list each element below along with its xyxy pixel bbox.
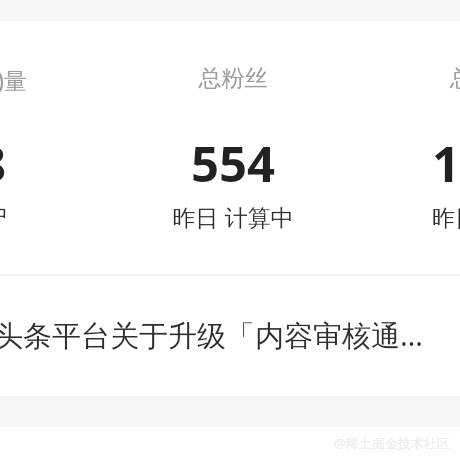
staticText: 总粉丝 [88,64,378,93]
button[interactable]: 次)量 [0,56,64,236]
staticText: 88 [0,130,7,197]
staticText: 次)量 [0,64,27,95]
button[interactable]: 总阅读 [378,56,460,236]
button[interactable]: 头条平台关于升级「内容审核通… [0,290,460,372]
staticText: 昨日 计算中 [432,201,460,232]
staticText: 昨日 计算中 [88,201,378,232]
staticText: 总阅读 [450,64,460,93]
staticText: @稀土掘金技术社区 [334,434,450,452]
button[interactable]: 总粉丝 [88,56,378,236]
staticText: 算中 [0,201,8,230]
staticText: 头条平台关于升级「内容审核通… [0,315,423,355]
staticText: 16 [432,130,460,197]
staticText: 554 [88,130,378,197]
